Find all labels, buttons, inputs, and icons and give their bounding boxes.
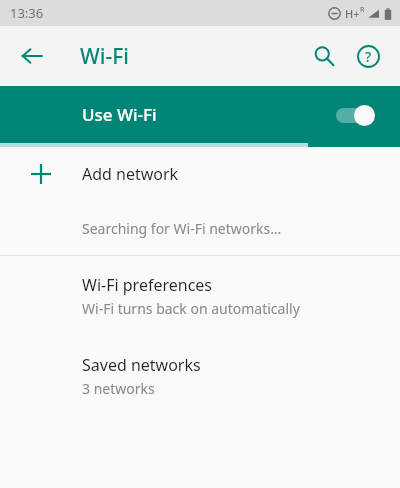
button[interactable]: Add network [0, 147, 400, 201]
staticText: Wi-Fi preferences [82, 274, 213, 296]
staticText: Add network [82, 163, 179, 185]
staticText: Saved networks [82, 354, 201, 376]
staticText: Searching for Wi-Fi networks… [82, 219, 282, 238]
button[interactable]: Search [302, 34, 346, 78]
staticText: 3 networks [82, 379, 155, 398]
button[interactable]: Use Wi-Fi [0, 86, 400, 143]
staticText: H+ [345, 6, 360, 21]
staticText: 13:36 [10, 4, 44, 22]
staticText: ? [365, 47, 372, 66]
staticText: R [360, 5, 365, 15]
button[interactable]: Saved networks [0, 336, 400, 416]
staticText: Wi-Fi [80, 42, 129, 71]
staticText: Wi-Fi turns back on automatically [82, 299, 300, 318]
button[interactable]: Back [12, 36, 52, 76]
staticText: Use Wi-Fi [82, 103, 332, 126]
button[interactable]: Wi-Fi preferences [0, 256, 400, 336]
button[interactable]: Help [346, 34, 390, 78]
